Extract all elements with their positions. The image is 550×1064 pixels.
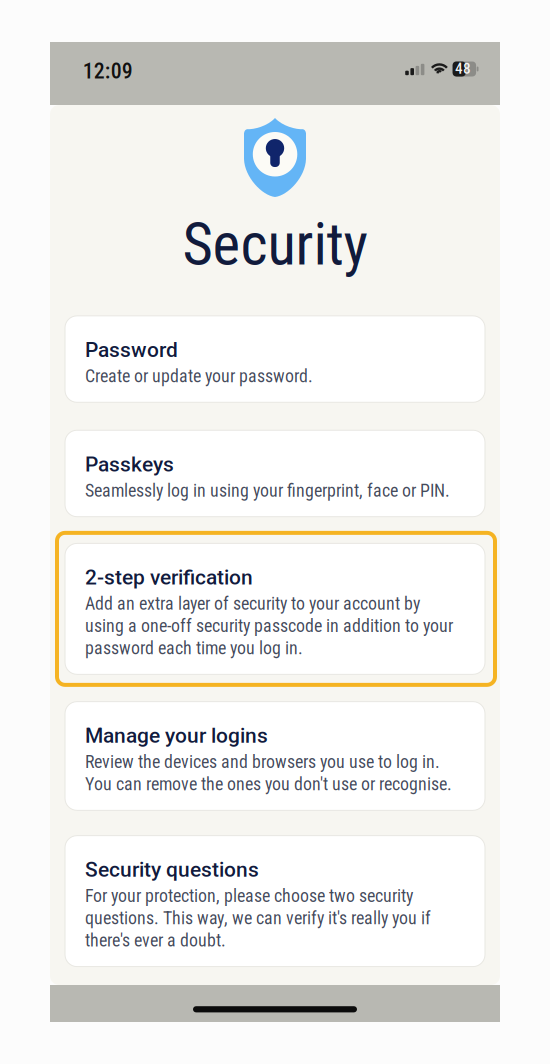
staticText: Create or update your password. (85, 366, 313, 387)
button[interactable]: Password (65, 316, 485, 402)
staticText: password each time you log in. (85, 638, 303, 659)
staticText: using a one-off security passcode in add… (85, 615, 453, 636)
staticText: 48 (455, 59, 471, 77)
button[interactable]: Security questions (65, 836, 485, 966)
button[interactable]: 2-step verification (65, 543, 485, 674)
staticText: Add an extra layer of security to your a… (85, 593, 420, 614)
staticText: Password (85, 338, 178, 362)
staticText: questions. This way, we can verify it's … (85, 908, 431, 929)
staticText: there's ever a doubt. (85, 930, 226, 951)
staticText: Seamlessly log in using your fingerprint… (85, 480, 450, 501)
button[interactable]: Manage your logins (65, 702, 485, 810)
button[interactable]: Passkeys (65, 430, 485, 517)
staticText: You can remove the ones you don't use or… (85, 774, 452, 795)
staticText: Security questions (85, 857, 259, 882)
staticText: Security (182, 210, 367, 279)
staticText: Review the devices and browsers you use … (85, 751, 440, 772)
staticText: 2-step verification (85, 565, 253, 590)
staticText: Passkeys (85, 452, 174, 476)
staticText: For your protection, please choose two s… (85, 885, 413, 906)
staticText: 12:09 (83, 58, 133, 84)
staticText: Manage your logins (85, 723, 268, 748)
